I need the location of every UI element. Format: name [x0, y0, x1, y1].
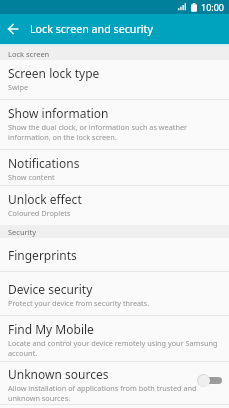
staticText: Screen lock type	[8, 65, 100, 81]
staticText: Device security	[8, 281, 93, 297]
button[interactable]: Notifications	[0, 150, 229, 185]
button[interactable]	[0, 14, 26, 44]
staticText: Lock screen and security	[30, 22, 153, 37]
button[interactable]: Unlock effect	[0, 186, 229, 225]
staticText: Show the dual clock, or information such…	[8, 122, 188, 142]
staticText: 10:00	[201, 1, 225, 13]
staticText: Find My Mobile	[8, 321, 94, 337]
staticText: Security	[8, 227, 37, 237]
staticText: Coloured Droplets	[8, 208, 71, 218]
staticText: Protect your device from security threat…	[8, 298, 150, 308]
button[interactable]: Device security	[0, 272, 229, 315]
staticText: Unlock effect	[8, 191, 82, 207]
button[interactable]: Find My Mobile	[0, 316, 229, 361]
button[interactable]: Fingerprints	[0, 238, 229, 271]
staticText: Fingerprints	[8, 247, 77, 263]
staticText: Show content	[8, 172, 55, 182]
staticText: Show information	[8, 105, 109, 121]
staticText: Locate and control your device remotely …	[8, 338, 218, 358]
button[interactable]	[197, 374, 222, 387]
button[interactable]: Unknown sources	[0, 362, 229, 404]
staticText: Swipe	[8, 82, 29, 92]
staticText: Unknown sources	[8, 366, 109, 382]
button[interactable]: Screen lock type	[0, 60, 229, 99]
button[interactable]: Show information	[0, 100, 229, 149]
staticText: Allow installation of applications from …	[8, 383, 197, 403]
staticText: Notifications	[8, 155, 80, 171]
staticText: Lock screen	[8, 49, 50, 59]
